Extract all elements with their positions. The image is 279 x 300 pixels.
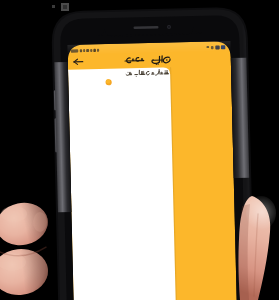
button[interactable]: Phone mockup, app screen — [0, 0, 279, 300]
